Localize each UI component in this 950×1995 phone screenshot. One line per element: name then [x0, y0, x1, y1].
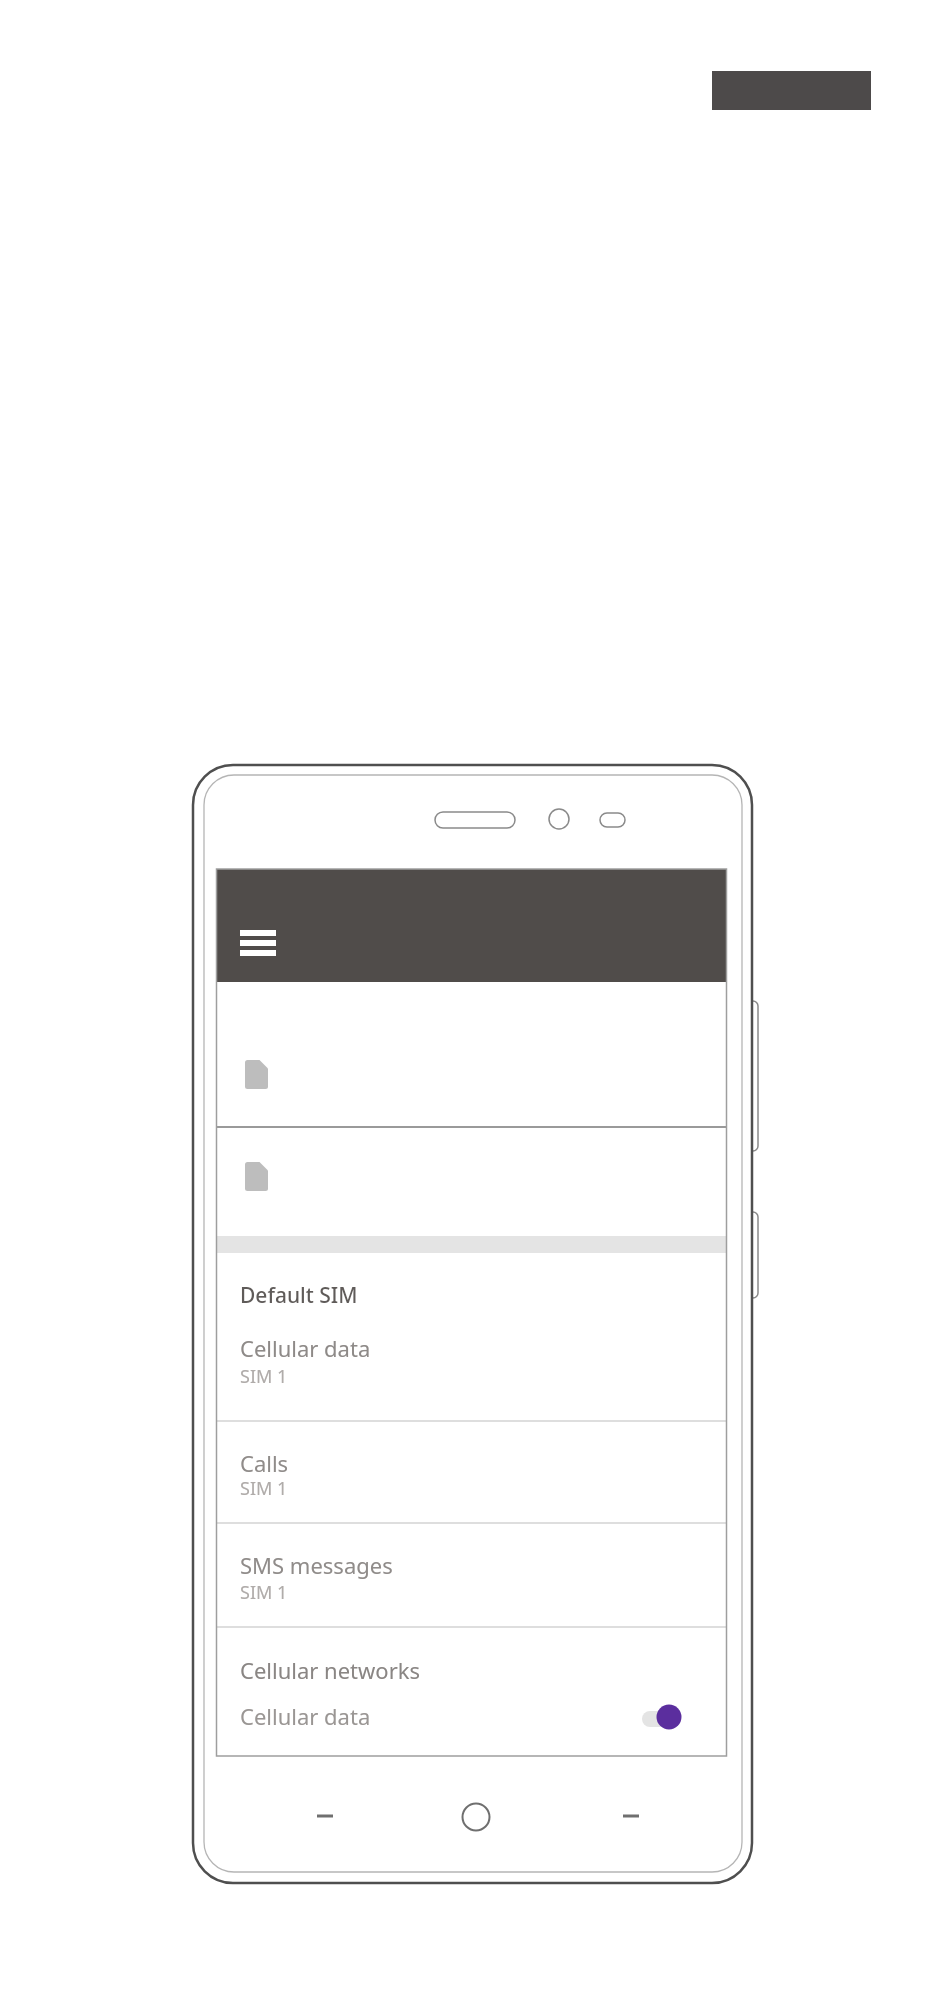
button[interactable] [217, 982, 726, 1126]
staticText: Calls [240, 1448, 289, 1478]
button[interactable] [240, 930, 276, 956]
button[interactable] [217, 1128, 726, 1236]
staticText: SIM 1 [240, 1476, 288, 1501]
staticText: SIM 1 [240, 1364, 288, 1389]
button[interactable]: Cellular data [217, 1694, 726, 1740]
staticText: Cellular data [240, 1333, 371, 1363]
button[interactable]: SMS messages [217, 1524, 726, 1626]
staticText: Default SIM [240, 1281, 358, 1310]
button[interactable]: Calls [217, 1422, 726, 1523]
staticText: SIM 1 [240, 1580, 288, 1605]
staticText: SMS messages [240, 1550, 393, 1580]
staticText: Cellular data [240, 1701, 371, 1731]
staticText: Cellular networks [240, 1655, 421, 1685]
button[interactable]: Cellular data [217, 1324, 726, 1421]
